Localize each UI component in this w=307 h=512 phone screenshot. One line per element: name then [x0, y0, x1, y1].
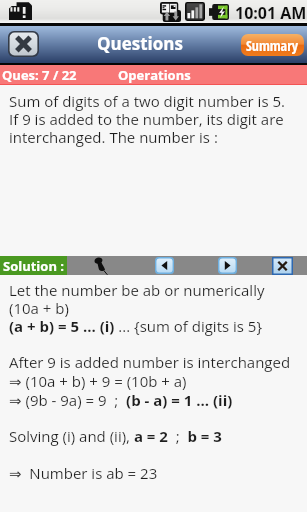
button[interactable]: Close solution [272, 257, 293, 275]
staticText: Operations [118, 66, 191, 84]
button[interactable]: Summary [241, 34, 304, 56]
staticText: Ques: 7 / 22 [2, 66, 77, 84]
staticText: Let the number be ab or numerically (10a… [9, 280, 305, 483]
staticText: Sum of digits of a two digit number is 5… [9, 91, 293, 148]
button[interactable]: Pin [93, 256, 108, 275]
button[interactable]: Next [218, 257, 237, 274]
staticText: Summary [246, 36, 299, 55]
staticText: Solution : [3, 257, 65, 275]
staticText: Questions [97, 32, 183, 55]
staticText: 10:01 AM [235, 2, 307, 24]
button[interactable]: Solution : [0, 256, 67, 275]
button[interactable]: Close [8, 31, 39, 57]
button[interactable]: Previous [155, 257, 174, 274]
